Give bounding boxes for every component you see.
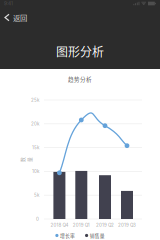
staticText: 增长率 — [60, 232, 75, 239]
staticText: 25k — [31, 97, 39, 103]
staticText: 9:41 — [4, 1, 13, 6]
staticText: 返回 — [13, 12, 27, 23]
staticText: 10k — [32, 169, 39, 174]
staticText: 销售量 — [90, 232, 105, 239]
staticText: 0 — [36, 216, 39, 222]
staticText: 数量 — [23, 152, 28, 166]
button[interactable]: 返回 — [0, 7, 27, 28]
staticText: 趋势分析 — [68, 75, 92, 83]
staticText: 5k — [34, 192, 39, 198]
staticText: 20k — [31, 121, 39, 127]
staticText: 2019 Q1 — [73, 222, 90, 228]
staticText: 15k — [32, 145, 39, 150]
staticText: 图形分析 — [56, 43, 104, 60]
staticText: 2019 Q3 — [118, 222, 136, 228]
staticText: 2018 Q4 — [50, 222, 68, 228]
staticText: 2019 Q2 — [96, 222, 114, 228]
